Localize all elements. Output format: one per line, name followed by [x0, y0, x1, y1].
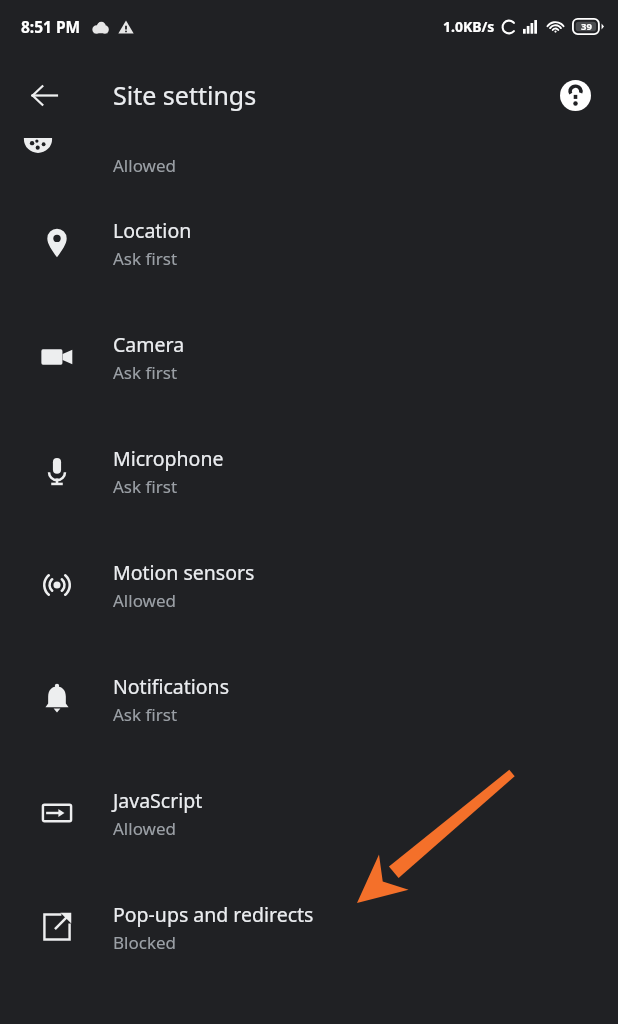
staticText: Location [113, 217, 192, 244]
button[interactable]: Camera [0, 300, 618, 414]
staticText: Camera [113, 331, 185, 358]
button[interactable]: Microphone [0, 414, 618, 528]
staticText: Microphone [113, 445, 224, 472]
staticText: 1.0KB/s [443, 17, 495, 36]
staticText: Ask first [113, 361, 178, 384]
staticText: Pop-ups and redirects [113, 901, 314, 928]
button[interactable]: JavaScript [0, 756, 618, 870]
staticText: JavaScript [113, 787, 203, 814]
staticText: 39 [581, 20, 592, 33]
staticText: Site settings [113, 78, 257, 112]
staticText: Ask first [113, 703, 178, 726]
staticText: Allowed [113, 154, 176, 177]
button[interactable]: Location [0, 186, 618, 300]
button[interactable]: Help [548, 68, 602, 122]
staticText: Allowed [113, 589, 176, 612]
staticText: 8:51 PM [21, 16, 81, 37]
staticText: Ask first [113, 475, 178, 498]
button[interactable]: Motion sensors [0, 528, 618, 642]
staticText: Allowed [113, 817, 176, 840]
button[interactable]: Back [14, 65, 74, 125]
button[interactable]: Allowed [0, 138, 618, 186]
staticText: Motion sensors [113, 559, 255, 586]
staticText: Blocked [113, 931, 177, 954]
button[interactable]: Notifications [0, 642, 618, 756]
staticText: Notifications [113, 673, 229, 700]
staticText: Ask first [113, 247, 178, 270]
button[interactable]: Pop-ups and redirects [0, 870, 618, 984]
